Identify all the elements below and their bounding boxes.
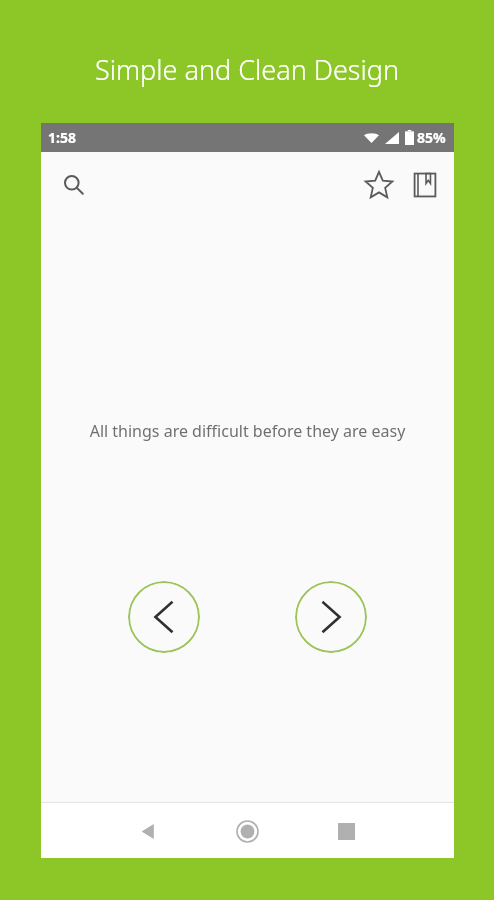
button[interactable]: Recent apps bbox=[322, 807, 370, 855]
button[interactable]: Search bbox=[51, 162, 97, 208]
button[interactable]: Favorite bbox=[356, 162, 402, 208]
button[interactable]: Previous bbox=[128, 581, 200, 653]
staticText: Simple and Clean Design bbox=[0, 51, 494, 88]
button[interactable]: Bookmarks bbox=[402, 162, 448, 208]
button[interactable]: Next bbox=[295, 581, 367, 653]
button[interactable]: Home bbox=[223, 807, 271, 855]
button[interactable]: Back bbox=[124, 807, 172, 855]
staticText: All things are difficult before they are… bbox=[61, 420, 434, 442]
staticText: 1:58 bbox=[48, 128, 76, 147]
staticText: 85% bbox=[417, 128, 446, 147]
